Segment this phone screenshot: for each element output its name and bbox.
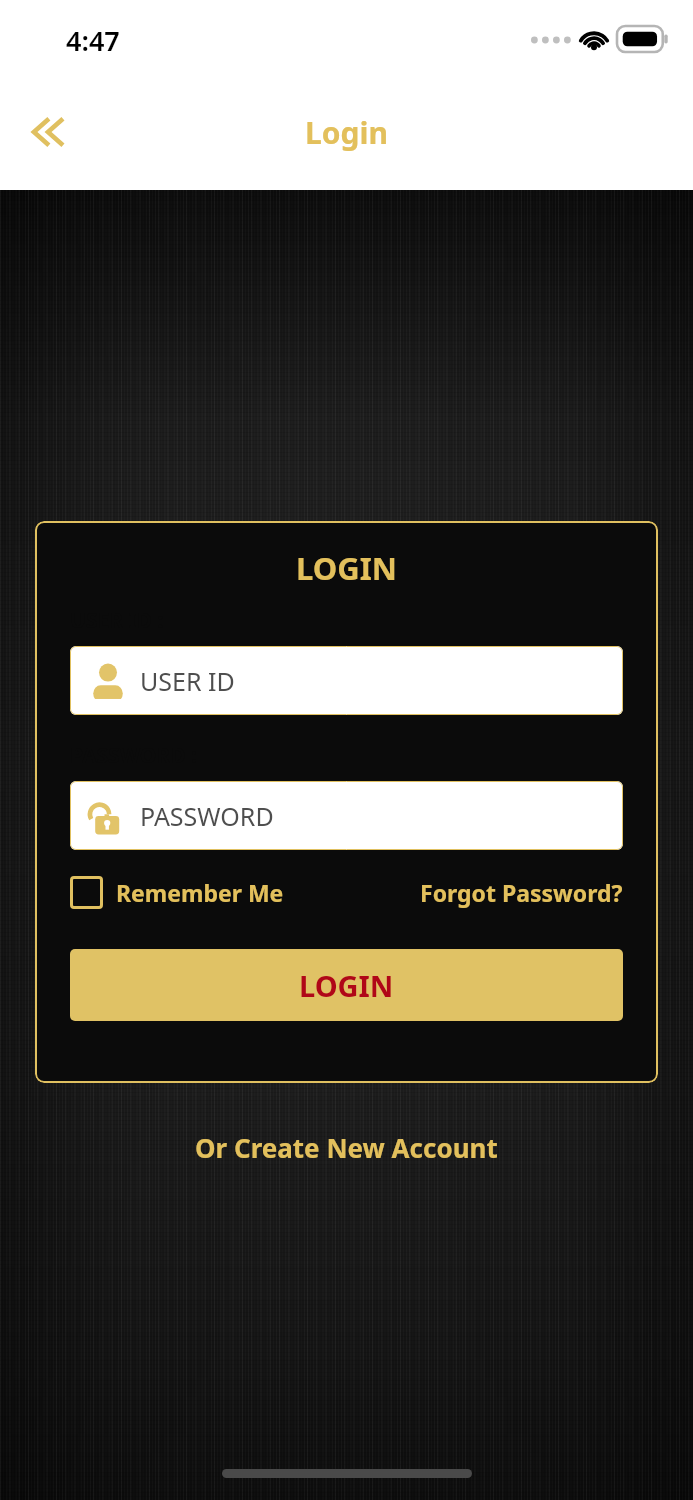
staticText: USER ID <box>140 664 235 698</box>
staticText: Forgot Password? <box>420 877 623 908</box>
staticText: 4:47 <box>66 22 120 59</box>
button[interactable]: PASSWORD <box>70 781 623 850</box>
staticText: LOGIN <box>70 547 623 589</box>
button[interactable]: LOGIN <box>70 949 623 1021</box>
staticText: Or Create New Account <box>195 1130 498 1165</box>
staticText: Remember Me <box>116 877 284 908</box>
staticText: PASSWORD <box>140 799 274 833</box>
staticText: Login <box>305 112 388 153</box>
button[interactable]: USER ID <box>70 646 623 715</box>
button[interactable]: Forgot Password? <box>420 873 623 912</box>
button[interactable]: Remember Me <box>70 872 284 913</box>
staticText: LOGIN <box>299 966 394 1005</box>
button[interactable]: Or Create New Account <box>35 1130 658 1165</box>
button[interactable]: Back <box>14 98 82 166</box>
